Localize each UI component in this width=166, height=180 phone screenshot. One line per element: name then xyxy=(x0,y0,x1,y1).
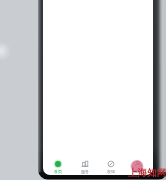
staticText: 发现 xyxy=(107,169,115,174)
button[interactable]: 我的 xyxy=(126,158,150,174)
staticText: 首页 xyxy=(54,169,62,174)
button[interactable]: 服务 xyxy=(73,158,97,174)
staticText: 我的 xyxy=(134,169,142,174)
staticText: 上海知网 xyxy=(128,167,166,179)
staticText: 服务 xyxy=(81,169,89,174)
button[interactable]: 首页 xyxy=(46,158,70,174)
button[interactable]: 发现 xyxy=(99,158,123,174)
